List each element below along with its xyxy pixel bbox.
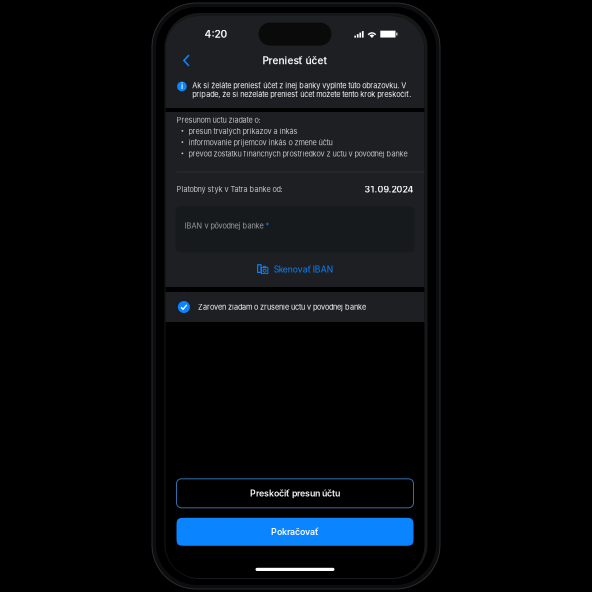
staticText: Skenovať IBAN (274, 264, 333, 274)
staticText: 4:20 (204, 28, 227, 40)
button[interactable]: Skenovať IBAN (165, 252, 424, 286)
staticText: Preskočiť presun účtu (250, 488, 340, 499)
staticText: informovanie prijemcov inkás o zmene účt… (188, 138, 332, 147)
button[interactable]: Zároveň žiadam o zrušenie účtu v pôvodne… (165, 292, 424, 322)
button[interactable]: Back (175, 49, 197, 72)
staticText: Pokračovať (271, 526, 319, 537)
staticText: Ak si želáte preniesť účet z inej banky … (192, 81, 411, 99)
staticText: prevod zostatku finančných prostriedkov … (188, 149, 407, 158)
staticText: presun trvalých príkazov a inkás (188, 127, 297, 136)
staticText: i (181, 82, 183, 91)
staticText: Presunom účtu žiadate o: (176, 116, 260, 125)
staticText: * (263, 221, 269, 230)
staticText: 31.09.2024 (364, 184, 413, 195)
staticText: IBAN v pôvodnej banke (184, 221, 263, 230)
button[interactable]: Pokračovať (176, 518, 413, 546)
button[interactable]: Preskočiť presun účtu (176, 479, 413, 508)
staticText: Preniesť účet (262, 54, 327, 67)
staticText: Zároveň žiadam o zrušenie účtu v pôvodne… (198, 303, 366, 311)
staticText: Platobný styk v Tatra banke od: (176, 185, 282, 194)
